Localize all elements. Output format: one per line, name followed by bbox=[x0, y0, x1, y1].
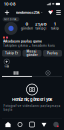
staticText: 1 bbox=[54, 22, 56, 26]
staticText: takip bbox=[51, 27, 59, 30]
button[interactable]: Yeni gönderi bbox=[3, 8, 11, 16]
staticText: Not bırak… bbox=[4, 18, 18, 21]
button[interactable]: Takip Et bbox=[2, 50, 21, 56]
button[interactable]: Mağaza bbox=[38, 119, 50, 130]
button[interactable]: 1 bbox=[48, 17, 62, 35]
staticText: Paylaş bbox=[47, 51, 58, 55]
button[interactable]: randomacc25k bbox=[16, 10, 43, 15]
button[interactable]: Beğeniler bbox=[47, 9, 53, 15]
staticText: 25,6B bbox=[35, 22, 47, 26]
staticText: Henüz hiç gönderi yok bbox=[12, 97, 52, 102]
staticText: takipçi bbox=[35, 27, 46, 30]
button[interactable]: Mesaj gönder bbox=[22, 50, 41, 56]
button[interactable]: Ara bbox=[14, 119, 26, 130]
button[interactable]: Yeni öne çıkan bbox=[4, 59, 9, 68]
button[interactable]: Ana sayfa bbox=[2, 119, 14, 130]
staticText: Takipten çıkma • hesabımı koru bbox=[3, 44, 55, 47]
staticText: gönderi bbox=[21, 27, 33, 30]
staticText: Yeni bbox=[4, 65, 9, 68]
button[interactable]: Paylaş bbox=[43, 50, 62, 56]
button[interactable]: Etiketlenenler bbox=[32, 70, 64, 76]
staticText: randomacc25k bbox=[16, 10, 40, 15]
button[interactable]: Gönderiler bbox=[0, 70, 32, 76]
button[interactable]: Profil fotoğrafı bbox=[2, 17, 20, 35]
staticText: Mesaj gönder bbox=[26, 50, 37, 57]
button[interactable]: Menü bbox=[56, 9, 61, 15]
staticText: Arkadaşını paylaş game bbox=[3, 39, 42, 43]
staticText: 0 bbox=[25, 22, 28, 26]
button[interactable]: 0 bbox=[20, 17, 34, 35]
staticText: 10:08 bbox=[4, 2, 16, 6]
button[interactable]: 25,6B bbox=[34, 17, 48, 35]
staticText: Fotoğraf ve videolarını paylaşmaya başla bbox=[3, 104, 60, 111]
staticText: Takip Et bbox=[5, 51, 18, 55]
button[interactable]: Reels bbox=[26, 119, 38, 130]
button[interactable]: Profil bbox=[50, 119, 62, 130]
